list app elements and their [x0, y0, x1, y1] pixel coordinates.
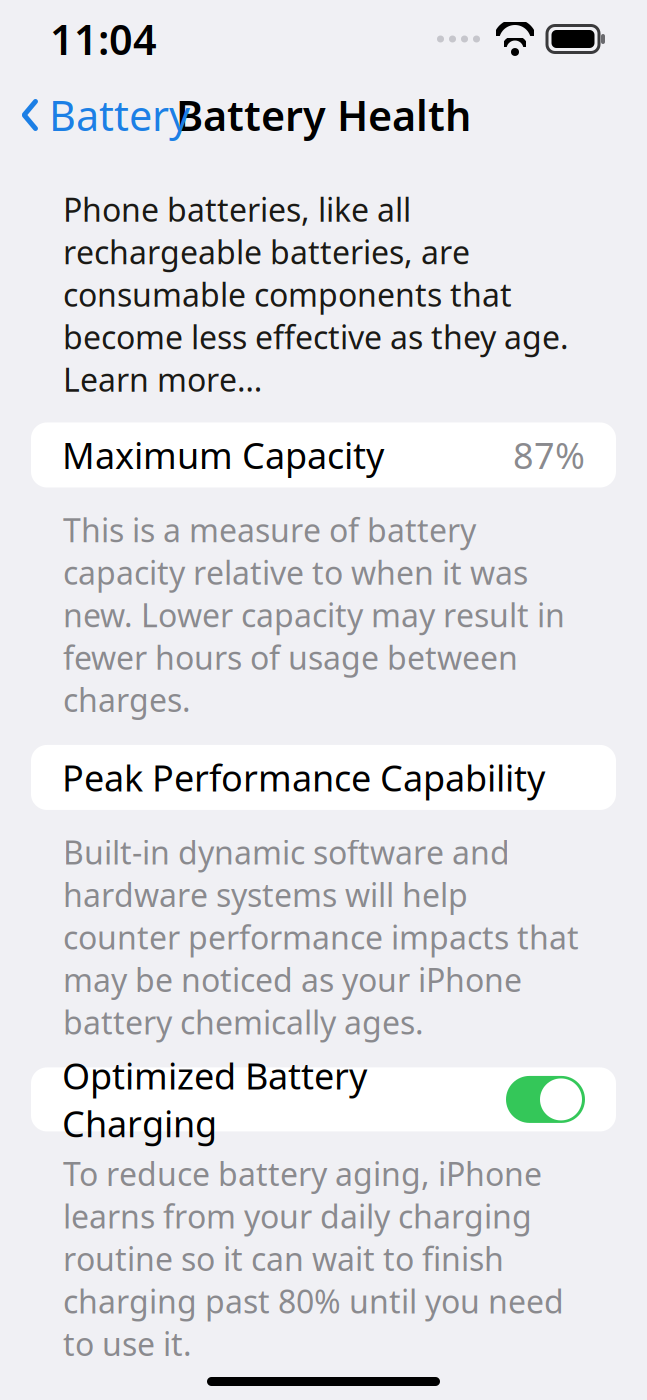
staticText: Built-in dynamic software and hardware s…	[63, 831, 579, 1043]
button[interactable]: Optimized Battery Charging	[31, 1067, 616, 1131]
button[interactable]: Maximum Capacity	[31, 422, 616, 487]
staticText: Phone batteries, like all rechargeable b…	[63, 188, 569, 400]
button[interactable]: Peak Performance Capability	[31, 745, 616, 810]
staticText: Battery	[49, 88, 190, 142]
staticText: To reduce battery aging, iPhone learns f…	[63, 1152, 564, 1365]
button[interactable]: Battery	[14, 79, 196, 151]
staticText: Optimized Battery Charging	[62, 1052, 367, 1147]
staticText: 87%	[513, 431, 585, 479]
staticText: This is a measure of battery capacity re…	[63, 508, 565, 721]
staticText: Battery Health	[176, 88, 471, 142]
staticText: Maximum Capacity	[62, 431, 384, 479]
staticText: Peak Performance Capability	[62, 753, 545, 801]
staticText: 11:04	[50, 12, 157, 66]
